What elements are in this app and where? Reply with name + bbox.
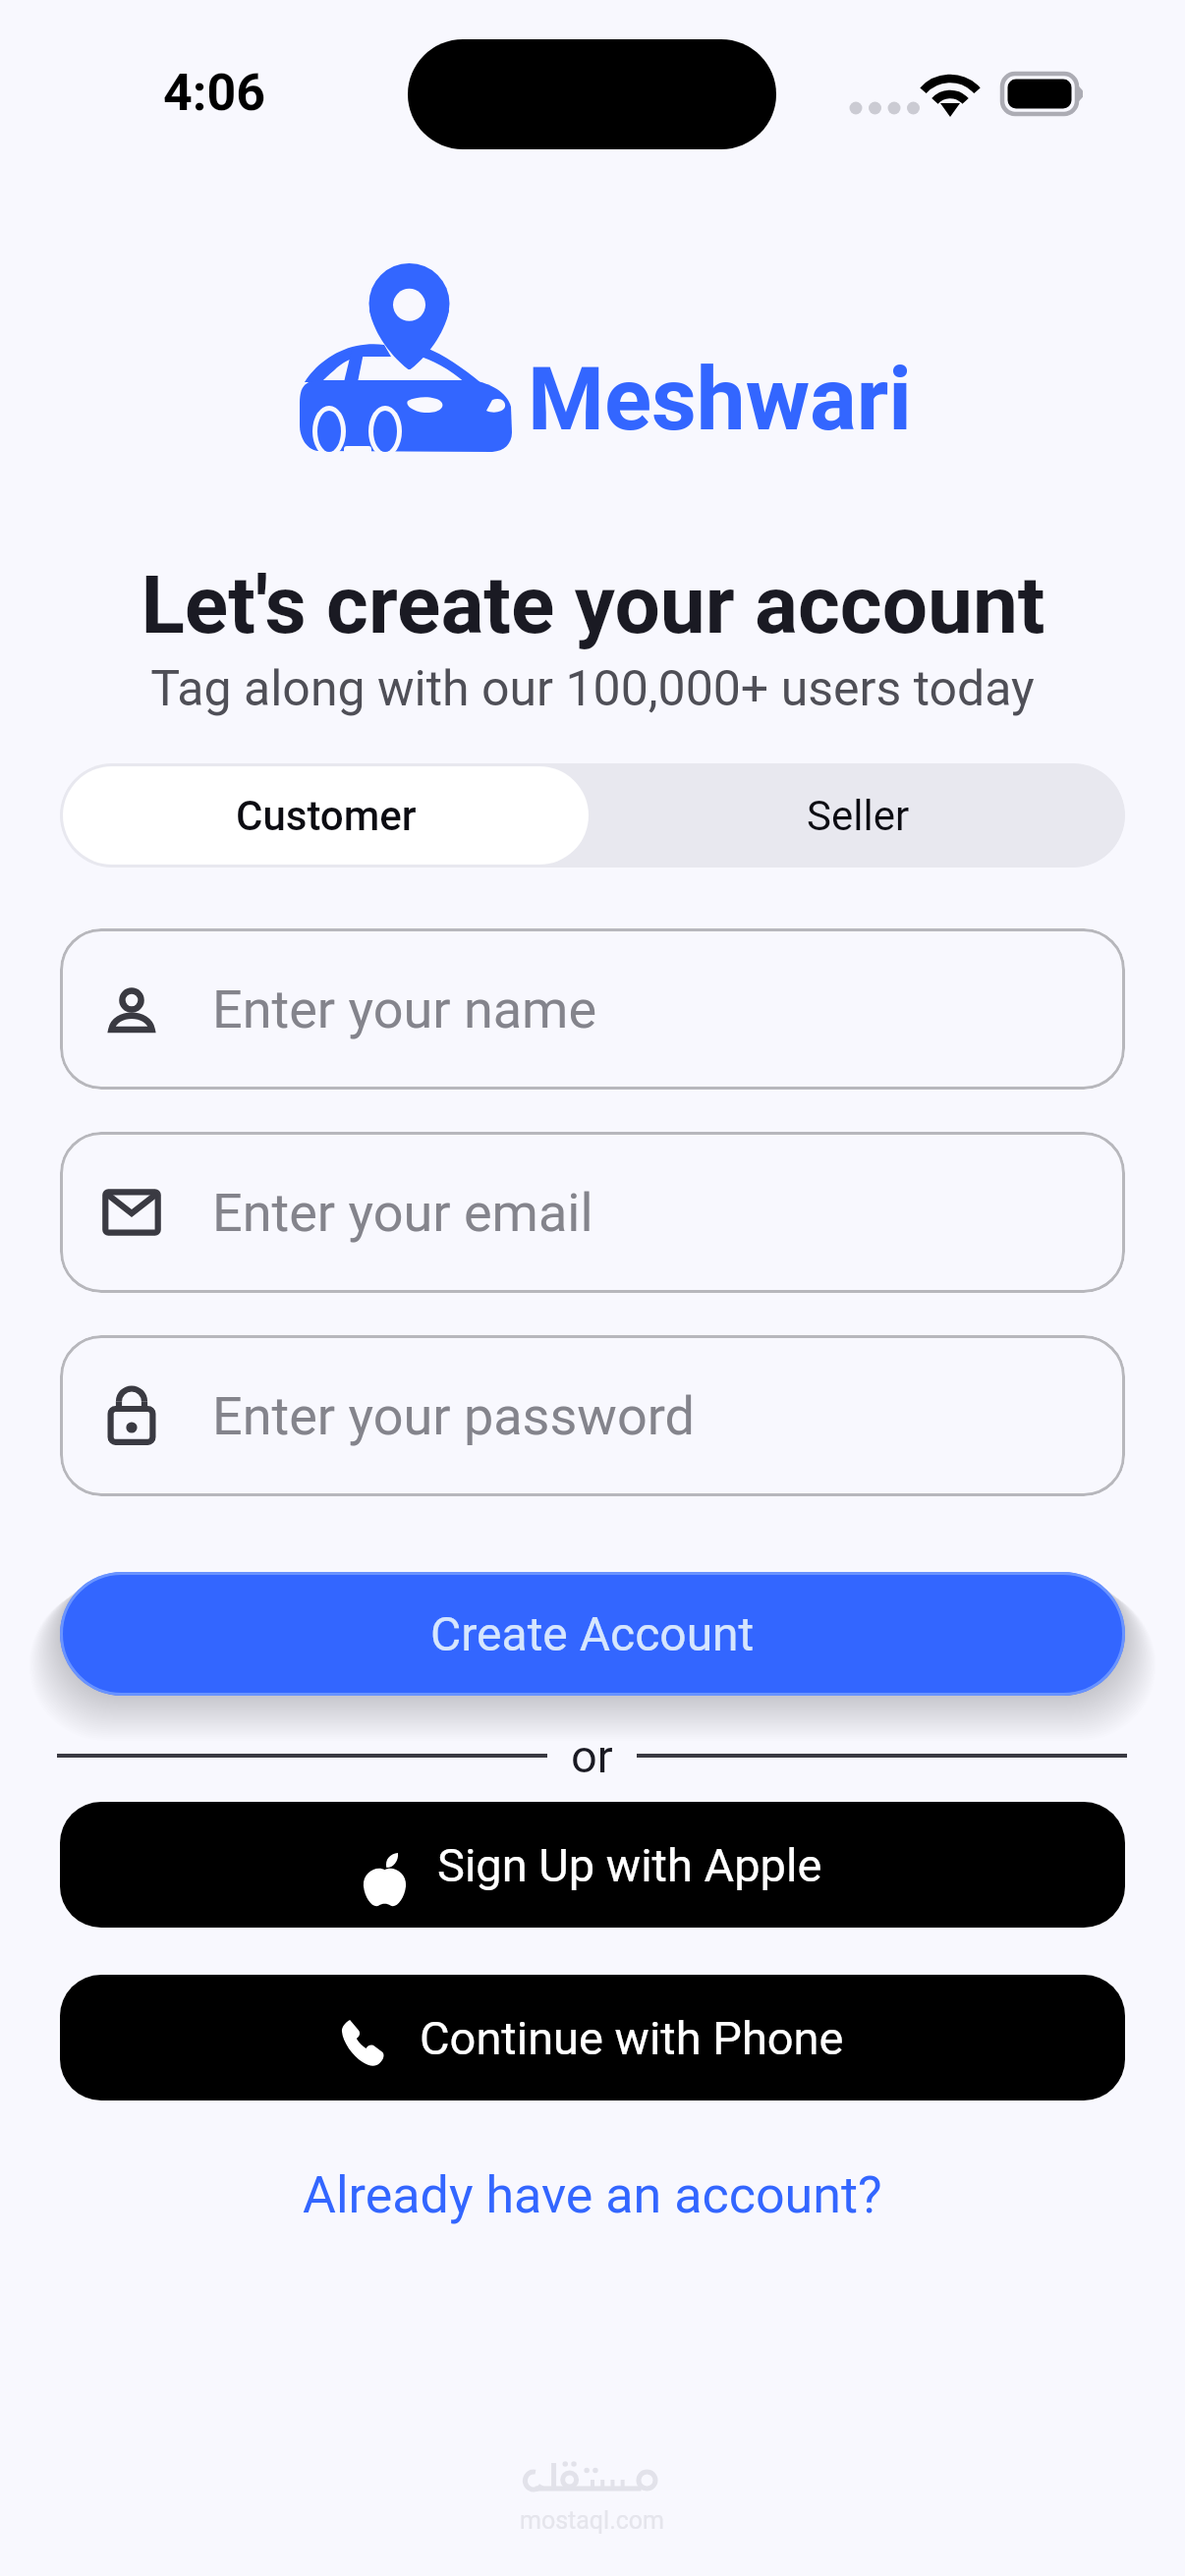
staticText: Let's create your account xyxy=(141,558,1045,652)
other: Status icons xyxy=(845,54,1086,123)
staticText: Tag along with our 100,000+ users today xyxy=(150,660,1035,718)
button[interactable]: Sign Up with Apple xyxy=(60,1802,1125,1928)
button[interactable]: Enter your password xyxy=(60,1335,1125,1496)
button[interactable]: Already have an account? xyxy=(283,2152,902,2239)
staticText: Enter your password xyxy=(212,1385,695,1447)
button[interactable]: Seller xyxy=(592,763,1125,868)
button[interactable]: Customer xyxy=(63,766,589,865)
staticText: or xyxy=(571,1729,613,1776)
button[interactable]: Enter your email xyxy=(60,1132,1125,1293)
staticText: 4:06 xyxy=(163,63,266,123)
staticText: Customer xyxy=(236,792,417,840)
button[interactable]: Enter your name xyxy=(60,928,1125,1090)
staticText: Sign Up with Apple xyxy=(437,1838,822,1892)
button[interactable]: Create Account xyxy=(60,1572,1125,1696)
staticText: Enter your name xyxy=(212,979,597,1040)
staticText: Enter your email xyxy=(212,1182,593,1244)
staticText: Seller xyxy=(807,792,910,840)
staticText: Already have an account? xyxy=(303,2165,882,2225)
staticText: Continue with Phone xyxy=(420,2011,844,2065)
staticText: Create Account xyxy=(430,1606,755,1661)
staticText: Meshwari xyxy=(528,348,912,450)
staticText: mostaql.com xyxy=(520,2506,665,2535)
button[interactable]: Continue with Phone xyxy=(60,1975,1125,2100)
